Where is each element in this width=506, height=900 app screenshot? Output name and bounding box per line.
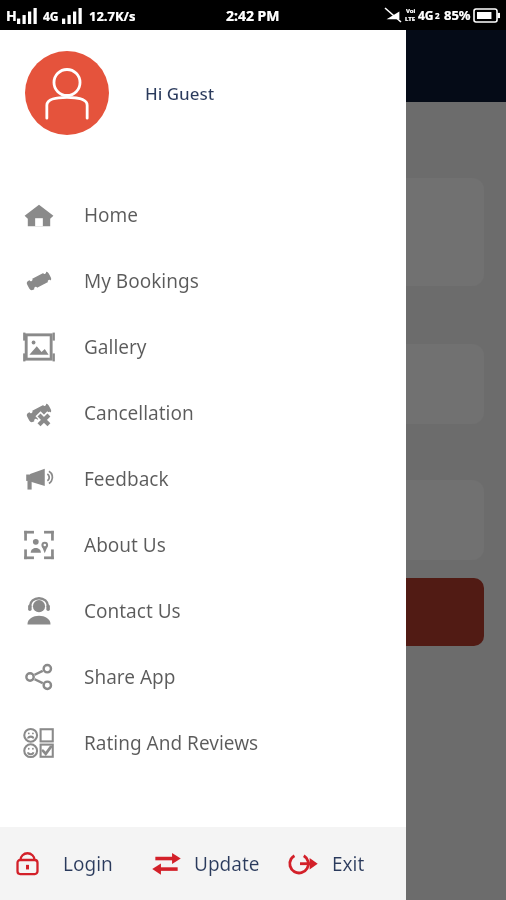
staticText: Contact Us [84, 598, 181, 624]
staticText: 4G [418, 7, 434, 23]
button[interactable]: Login [0, 842, 121, 885]
button[interactable]: Update [147, 840, 264, 887]
button[interactable]: Gallery [0, 314, 406, 380]
staticText: Feedback [84, 466, 169, 492]
button[interactable]: Feedback [0, 446, 406, 512]
staticText: Cancellation [84, 400, 194, 426]
staticText: H [6, 6, 17, 25]
staticText: LTE [405, 15, 416, 23]
staticText: Update [194, 851, 260, 877]
staticText: Login [63, 851, 113, 877]
staticText: Share App [84, 664, 176, 690]
staticText: Home [84, 202, 139, 228]
staticText: My Bookings [84, 268, 199, 294]
staticText: 12.7K/s [89, 7, 136, 25]
button[interactable]: Contact Us [0, 578, 406, 644]
button[interactable]: Exit [284, 841, 369, 887]
staticText: 4G [43, 8, 59, 24]
button[interactable]: Share App [0, 644, 406, 710]
staticText: 2:42 PM [226, 6, 280, 25]
button[interactable]: Rating And Reviews [0, 710, 406, 776]
button[interactable]: Hi Guest [0, 30, 406, 156]
button[interactable]: My Bookings [0, 248, 406, 314]
staticText: Rating And Reviews [84, 730, 259, 756]
staticText: Exit [332, 851, 365, 877]
staticText: About Us [84, 532, 166, 558]
button[interactable]: Home [0, 182, 406, 248]
staticText: Hi Guest [145, 82, 215, 105]
button[interactable]: Cancellation [0, 380, 406, 446]
staticText: Voi [406, 7, 416, 15]
button[interactable]: About Us [0, 512, 406, 578]
staticText: Gallery [84, 334, 147, 360]
staticText: 2 [435, 10, 440, 21]
staticText: 85% [444, 6, 471, 24]
